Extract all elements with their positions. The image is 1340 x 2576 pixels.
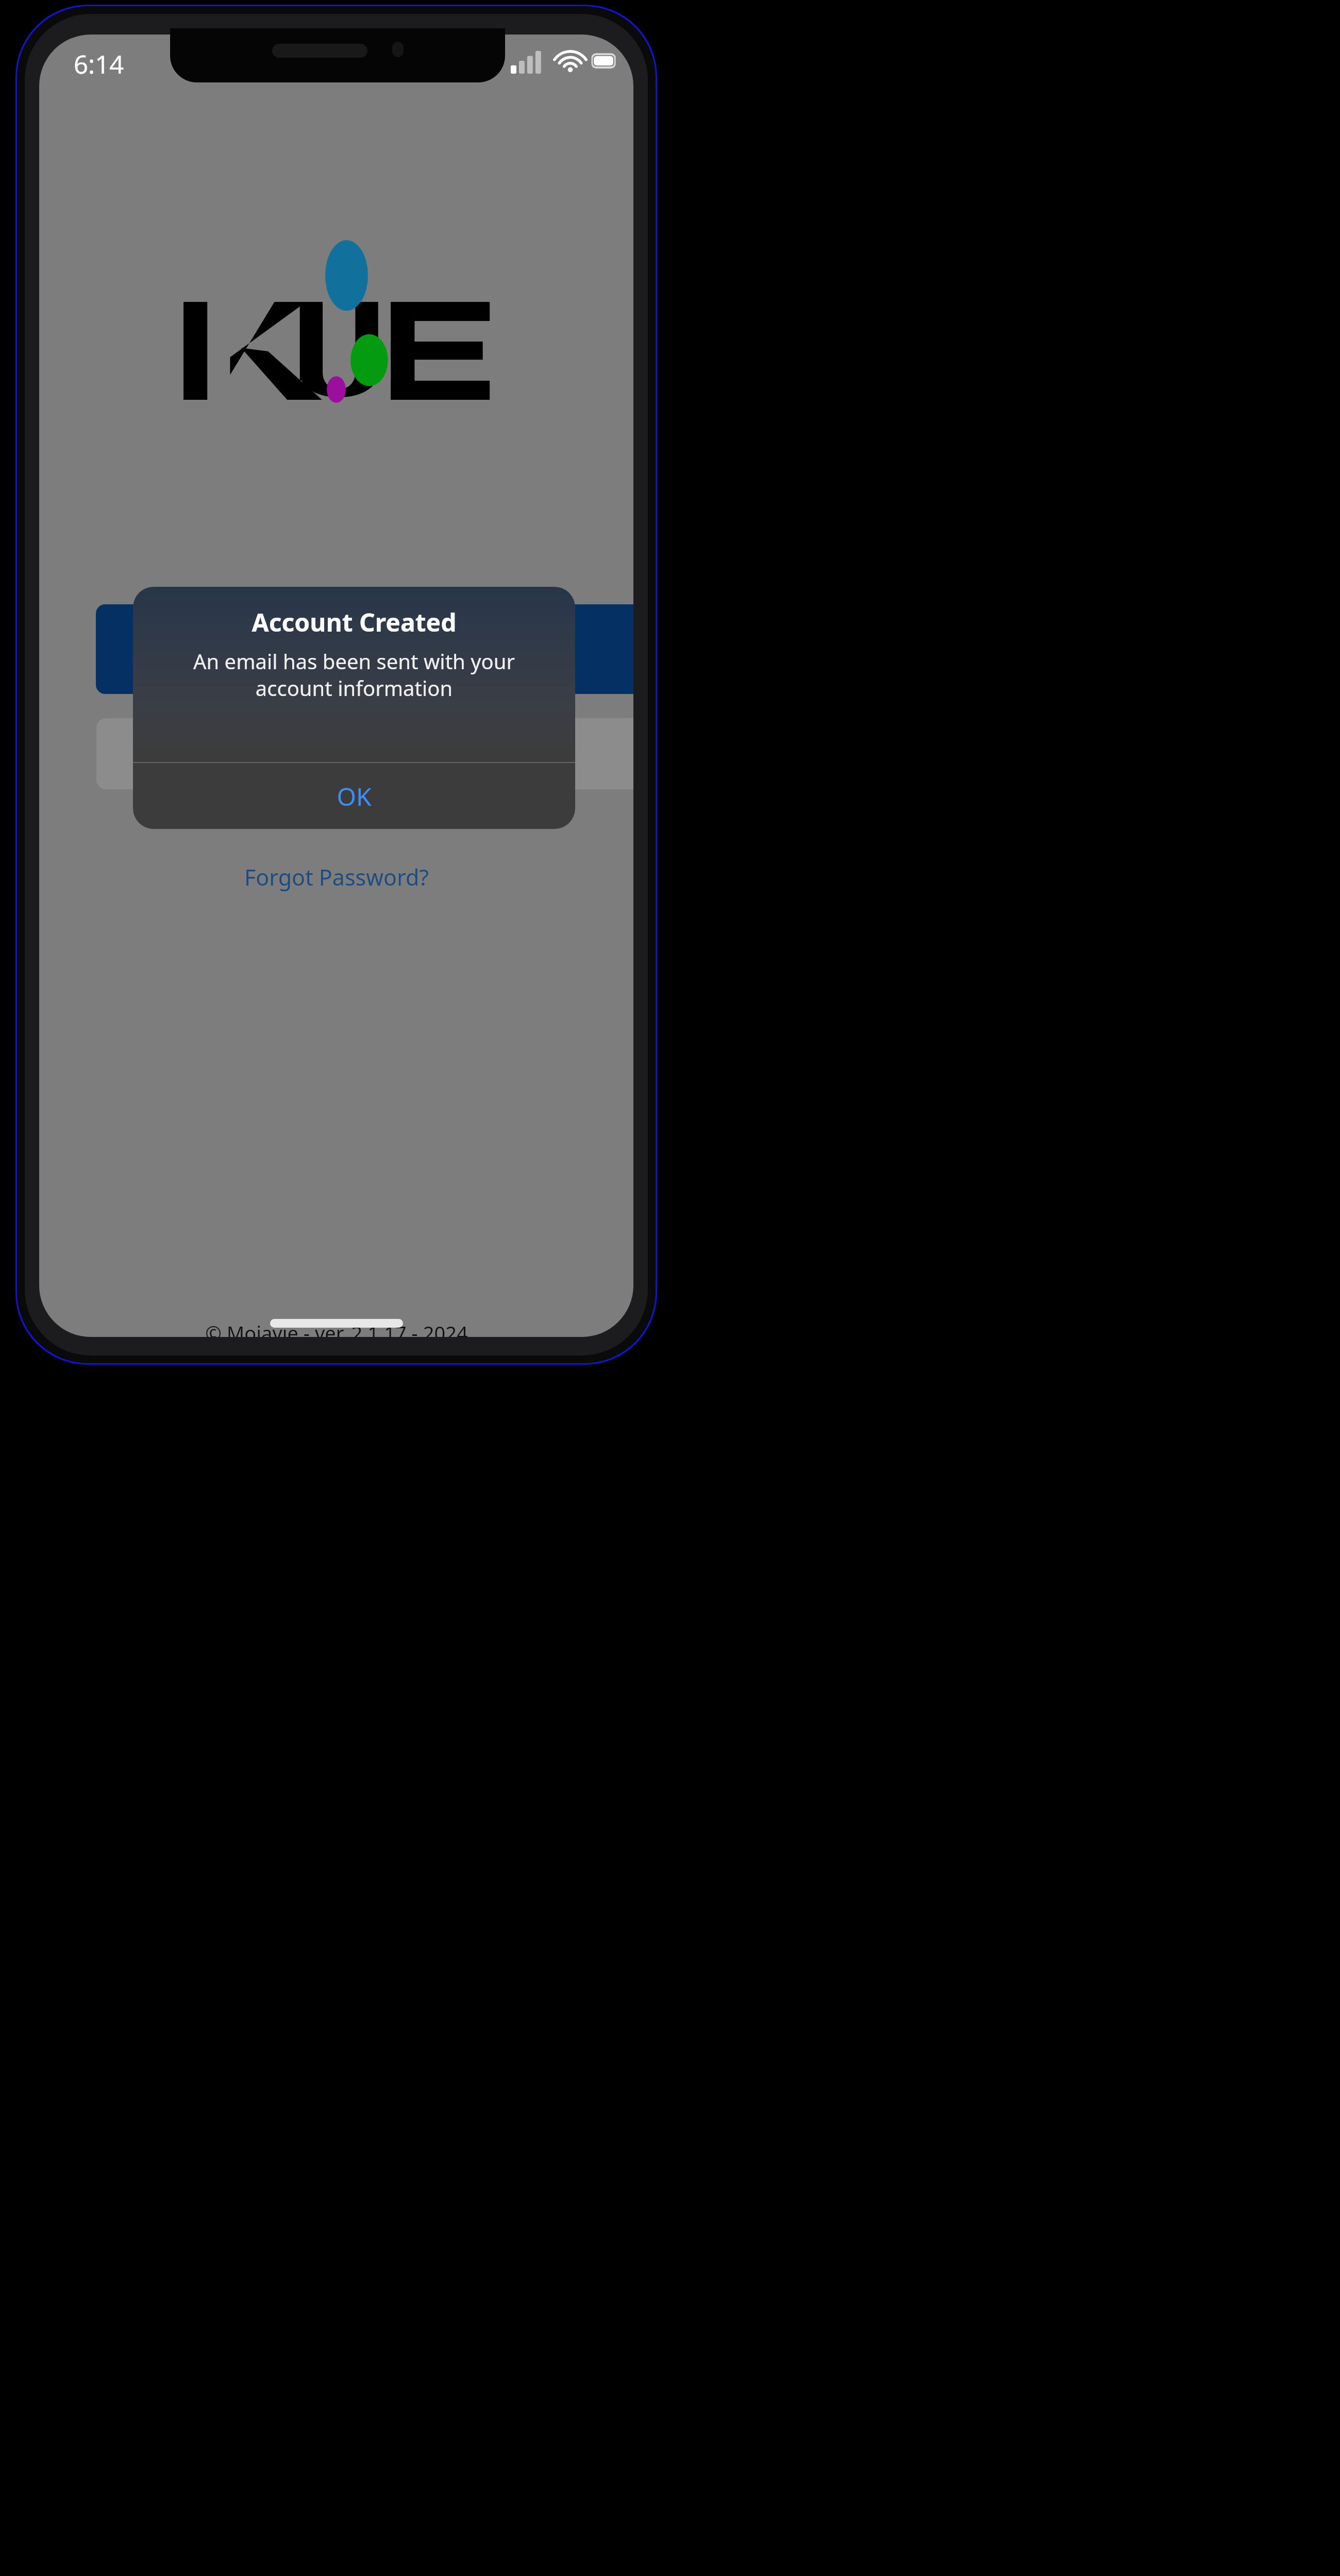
button[interactable]: Create account — [96, 718, 633, 789]
staticText: Account Created — [133, 605, 575, 639]
button[interactable]: Sign in — [96, 604, 633, 694]
button[interactable]: OK — [133, 763, 575, 829]
button[interactable]: Forgot Password? — [39, 854, 633, 900]
staticText: © Mojavie - ver. 2.1.17 - 2024 — [205, 1319, 468, 1337]
staticText: OK — [337, 779, 372, 813]
staticText: 6:14 — [74, 47, 124, 81]
staticText: An email has been sent with your account… — [153, 647, 556, 702]
staticText: Forgot Password? — [244, 862, 429, 892]
